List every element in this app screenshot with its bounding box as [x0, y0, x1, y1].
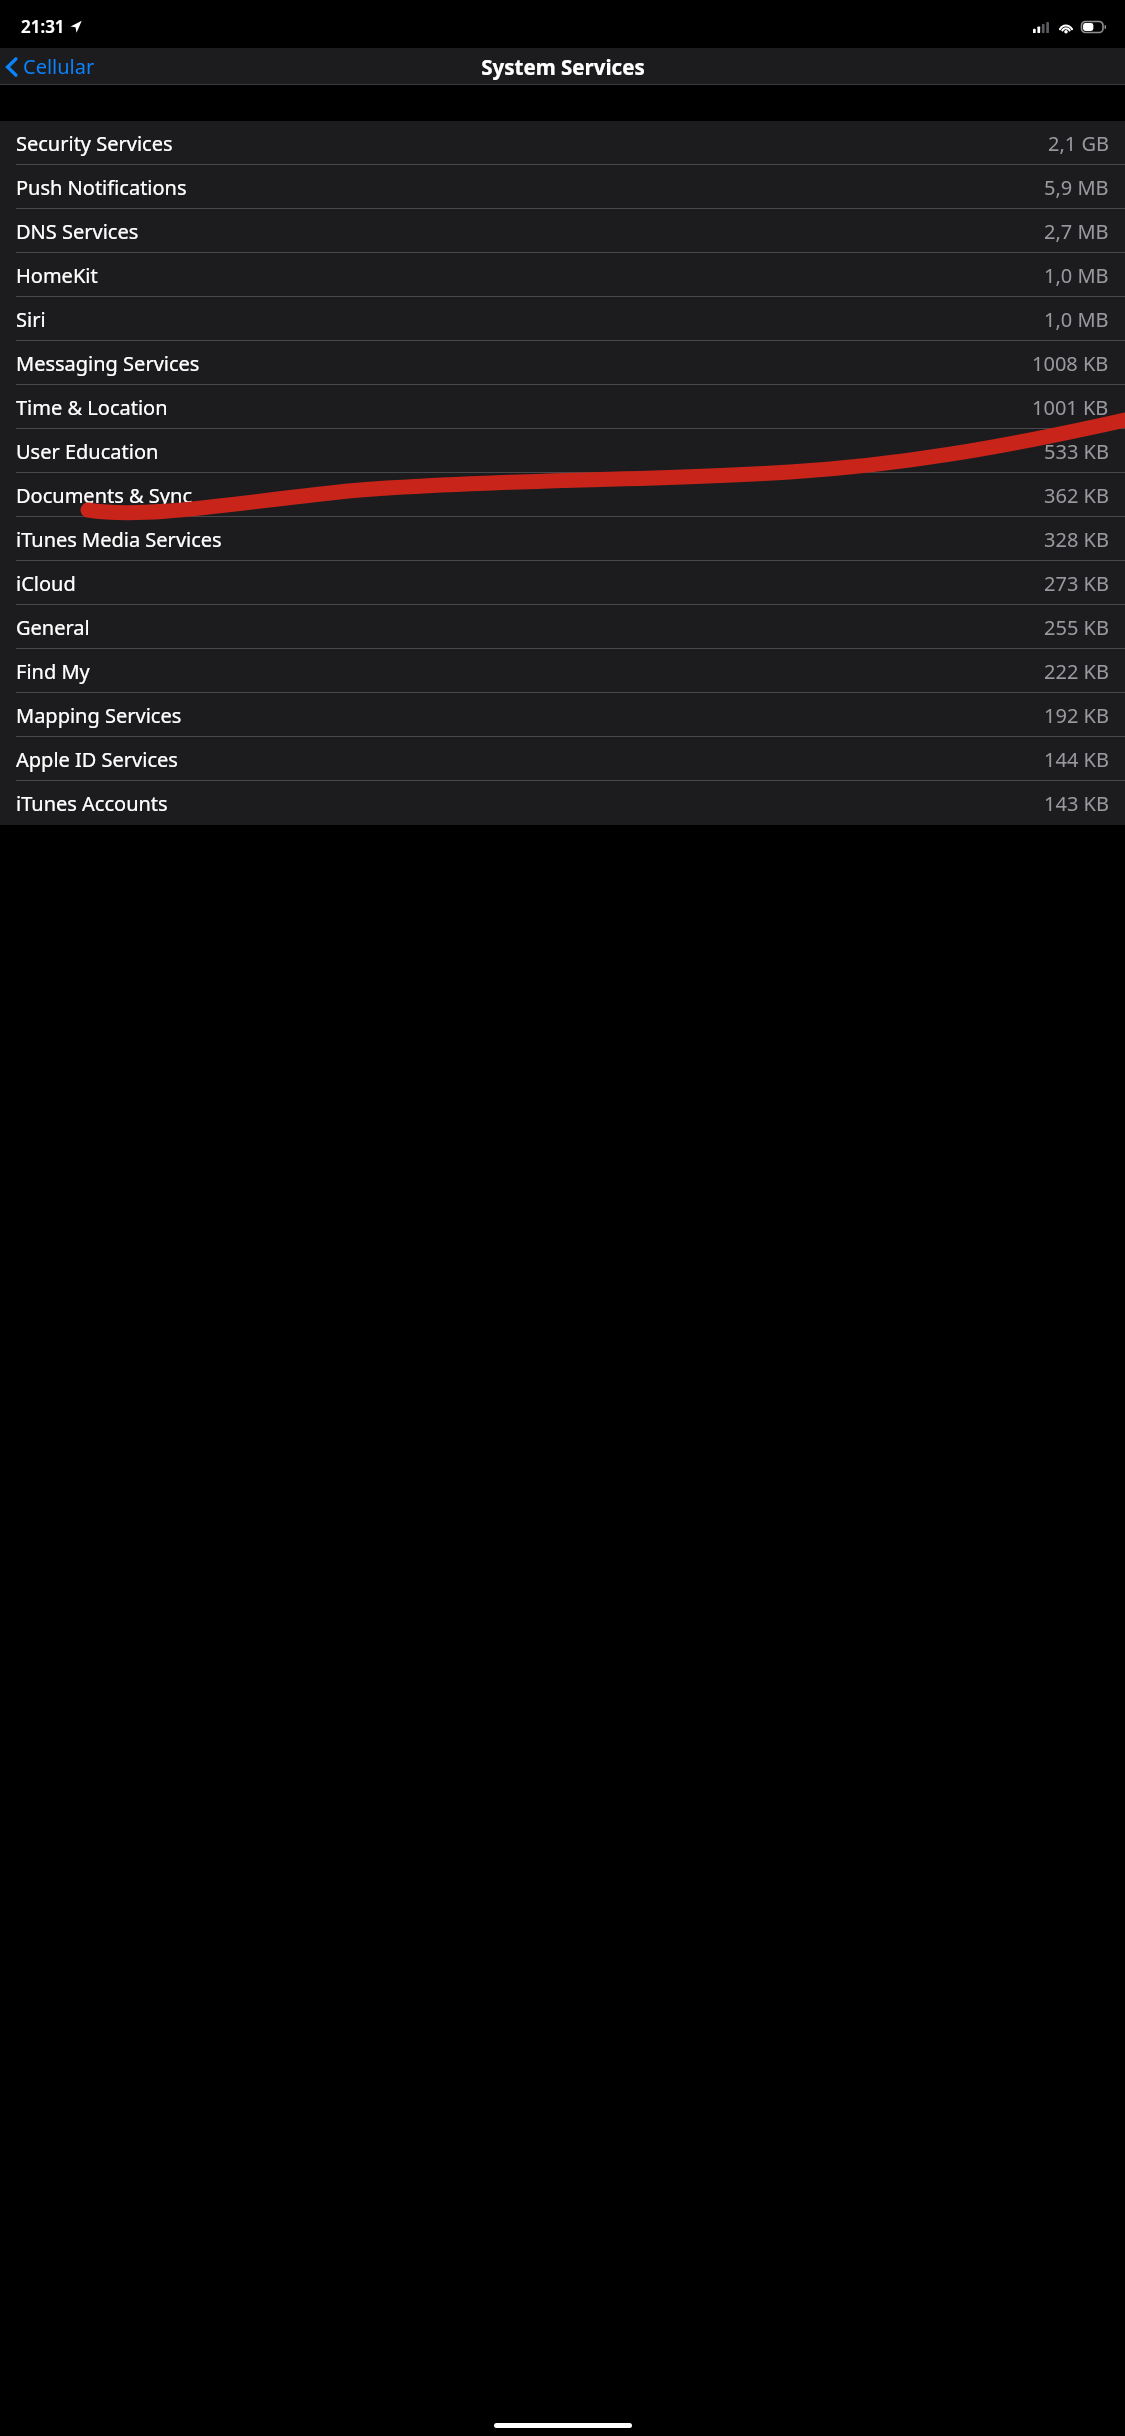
staticText: 1,0 MB	[1044, 306, 1109, 333]
staticText: Siri	[16, 306, 46, 333]
button[interactable]: User Education	[0, 429, 1125, 473]
staticText: 1001 KB	[1032, 394, 1109, 421]
staticText: Time & Location	[16, 394, 168, 421]
staticText: iCloud	[16, 570, 76, 597]
staticText: 1008 KB	[1032, 350, 1109, 377]
staticText: Push Notifications	[16, 174, 187, 201]
staticText: Apple ID Services	[16, 746, 178, 773]
staticText: Documents & Sync	[16, 482, 192, 509]
staticText: 2,7 MB	[1044, 218, 1109, 245]
button[interactable]: Cellular	[0, 49, 103, 84]
staticText: Mapping Services	[16, 702, 182, 729]
staticText: iTunes Media Services	[16, 526, 222, 553]
staticText: Messaging Services	[16, 350, 200, 377]
button[interactable]: iTunes Media Services	[0, 517, 1125, 561]
button[interactable]: Find My	[0, 649, 1125, 693]
staticText: User Education	[16, 438, 159, 465]
button[interactable]: DNS Services	[0, 209, 1125, 253]
staticText: 5,9 MB	[1044, 174, 1109, 201]
staticText: System Services	[481, 53, 645, 81]
staticText: 144 KB	[1044, 746, 1109, 773]
staticText: iTunes Accounts	[16, 790, 168, 817]
staticText: 255 KB	[1044, 614, 1109, 641]
staticText: 273 KB	[1044, 570, 1109, 597]
button[interactable]: iTunes Accounts	[0, 781, 1125, 825]
staticText: 1,0 MB	[1044, 262, 1109, 289]
button[interactable]: Push Notifications	[0, 165, 1125, 209]
staticText: 328 KB	[1044, 526, 1109, 553]
staticText: 143 KB	[1044, 790, 1109, 817]
staticText: Find My	[16, 658, 90, 685]
button[interactable]: Documents & Sync	[0, 473, 1125, 517]
button[interactable]: General	[0, 605, 1125, 649]
staticText: 533 KB	[1044, 438, 1109, 465]
staticText: HomeKit	[16, 262, 98, 289]
button[interactable]: Mapping Services	[0, 693, 1125, 737]
staticText: Cellular	[23, 53, 95, 80]
staticText: 192 KB	[1044, 702, 1109, 729]
staticText: 21:31	[21, 15, 65, 38]
staticText: General	[16, 614, 90, 641]
staticText: DNS Services	[16, 218, 139, 245]
staticText: 222 KB	[1044, 658, 1109, 685]
staticText: 2,1 GB	[1048, 130, 1109, 157]
button[interactable]: Messaging Services	[0, 341, 1125, 385]
button[interactable]: Siri	[0, 297, 1125, 341]
button[interactable]: HomeKit	[0, 253, 1125, 297]
button[interactable]: Apple ID Services	[0, 737, 1125, 781]
button[interactable]: Time & Location	[0, 385, 1125, 429]
button[interactable]: iCloud	[0, 561, 1125, 605]
staticText: Security Services	[16, 130, 173, 157]
button[interactable]: Security Services	[0, 121, 1125, 165]
staticText: 362 KB	[1044, 482, 1109, 509]
